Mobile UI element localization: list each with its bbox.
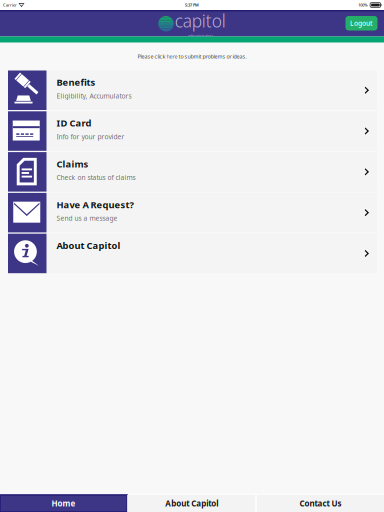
button[interactable]: Claims bbox=[8, 152, 377, 192]
staticText: here bbox=[166, 53, 177, 60]
staticText: About Capitol bbox=[56, 239, 120, 252]
staticText: Eligibility, Accumulators bbox=[56, 91, 131, 100]
staticText: About Capitol bbox=[165, 498, 218, 509]
button[interactable]: Logout bbox=[345, 16, 377, 30]
staticText: Send us a message bbox=[56, 214, 117, 223]
staticText: Contact Us bbox=[299, 498, 341, 509]
button[interactable]: here bbox=[166, 53, 177, 60]
staticText: Claims bbox=[56, 158, 88, 170]
staticText: 100% bbox=[358, 2, 367, 8]
button[interactable]: Have A Request? bbox=[8, 193, 377, 232]
staticText: Benefits bbox=[56, 76, 95, 88]
button[interactable]: Contact Us bbox=[257, 495, 384, 512]
staticText: Please click bbox=[137, 53, 166, 60]
button[interactable]: Home bbox=[0, 495, 127, 512]
button[interactable]: About Capitol bbox=[128, 495, 255, 512]
staticText: Have A Request? bbox=[56, 198, 133, 211]
staticText: Home bbox=[52, 498, 76, 509]
button[interactable]: About Capitol bbox=[8, 234, 377, 273]
staticText: Check on status of claims bbox=[56, 173, 135, 182]
staticText: Carrier bbox=[3, 2, 17, 8]
staticText: 5:37 PM bbox=[185, 2, 199, 8]
staticText: administrators bbox=[188, 33, 214, 38]
staticText: to submit problems or ideas. bbox=[177, 53, 246, 60]
staticText: ID Card bbox=[56, 117, 91, 129]
button[interactable]: Benefits bbox=[8, 70, 377, 110]
button[interactable]: ID Card bbox=[8, 111, 377, 151]
staticText: Logout bbox=[350, 19, 373, 28]
staticText: Info for your provider bbox=[56, 132, 124, 141]
staticText: capitol bbox=[175, 9, 226, 32]
